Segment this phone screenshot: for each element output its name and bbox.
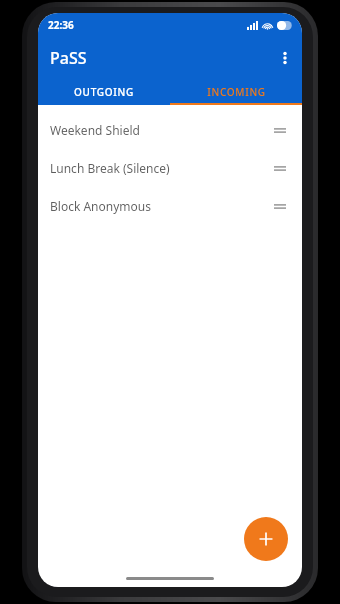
other: Reorder Lunch Break (Silence) — [270, 158, 290, 178]
button[interactable]: Lunch Break (Silence) — [38, 149, 302, 187]
button[interactable]: Weekend Shield — [38, 111, 302, 149]
staticText: OUTGOING — [74, 85, 134, 99]
button[interactable]: INCOMING — [170, 79, 302, 105]
staticText: Weekend Shield — [50, 122, 270, 138]
staticText: INCOMING — [207, 85, 266, 99]
button[interactable]: Add rule — [244, 517, 288, 561]
button[interactable]: Block Anonymous — [38, 187, 302, 225]
staticText: Block Anonymous — [50, 198, 270, 214]
staticText: PaSS — [50, 47, 87, 69]
other: Reorder Weekend Shield — [270, 120, 290, 140]
button[interactable]: More options — [268, 37, 302, 79]
button[interactable]: OUTGOING — [38, 79, 170, 105]
staticText: 22:36 — [48, 18, 74, 32]
staticText: Lunch Break (Silence) — [50, 160, 270, 176]
other: Reorder Block Anonymous — [270, 196, 290, 216]
